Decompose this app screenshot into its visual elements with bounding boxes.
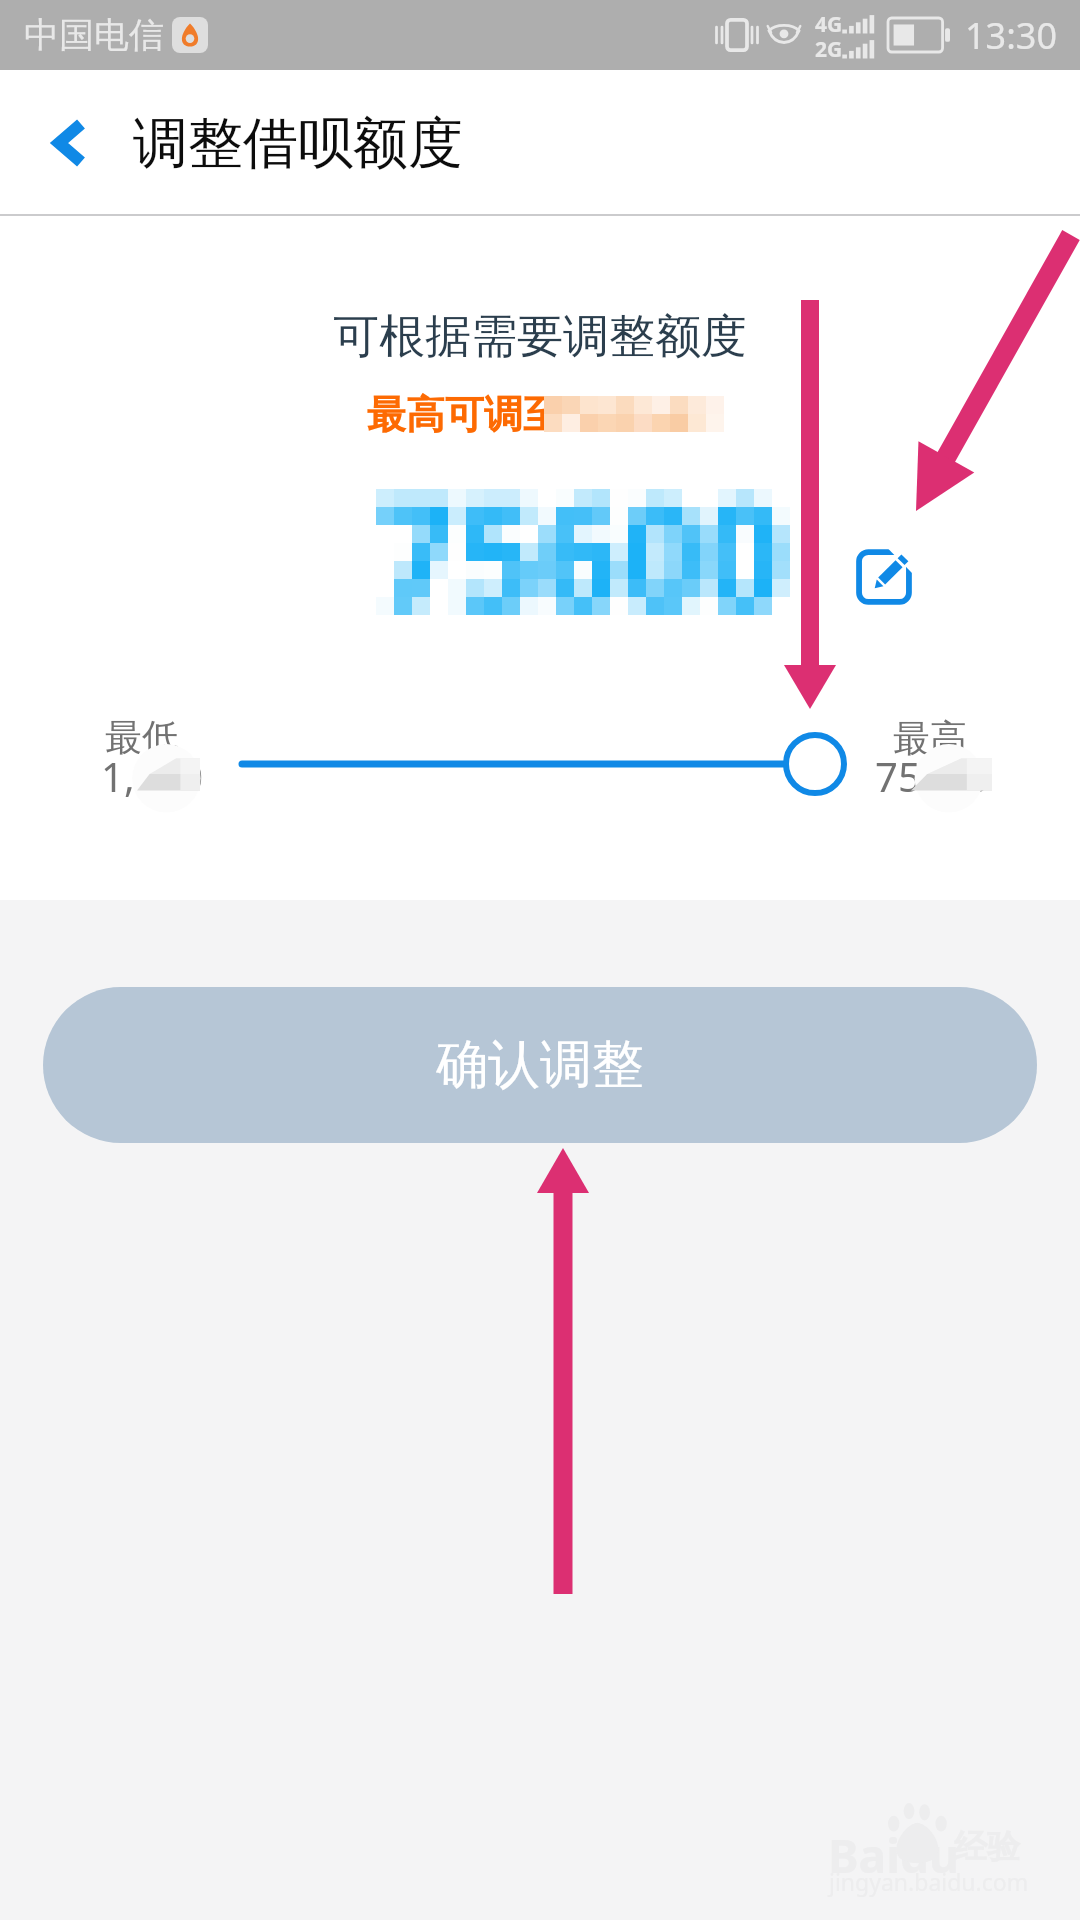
staticText: 75600 [875,749,990,803]
button[interactable]: Edit amount [855,548,913,606]
staticText: 1,000 [101,749,204,803]
button[interactable]: 确认调整 [43,987,1037,1143]
staticText: 最高可调至 [367,390,562,439]
staticText: 可根据需要调整额度 [333,308,747,366]
staticText: 确认调整 [436,1032,644,1098]
staticText: 中国电信 [24,13,164,57]
staticText: 最高 [893,715,967,762]
staticText: 2G [815,35,843,60]
staticText: 经验 [954,1826,1020,1868]
staticText: 调整借呗额度 [133,109,463,178]
staticText: 13:30 [965,11,1058,60]
button[interactable]: Back [0,70,130,216]
staticText: 4G [815,10,843,39]
staticText: Baidu [828,1824,959,1887]
staticText: 最低 [105,714,179,761]
